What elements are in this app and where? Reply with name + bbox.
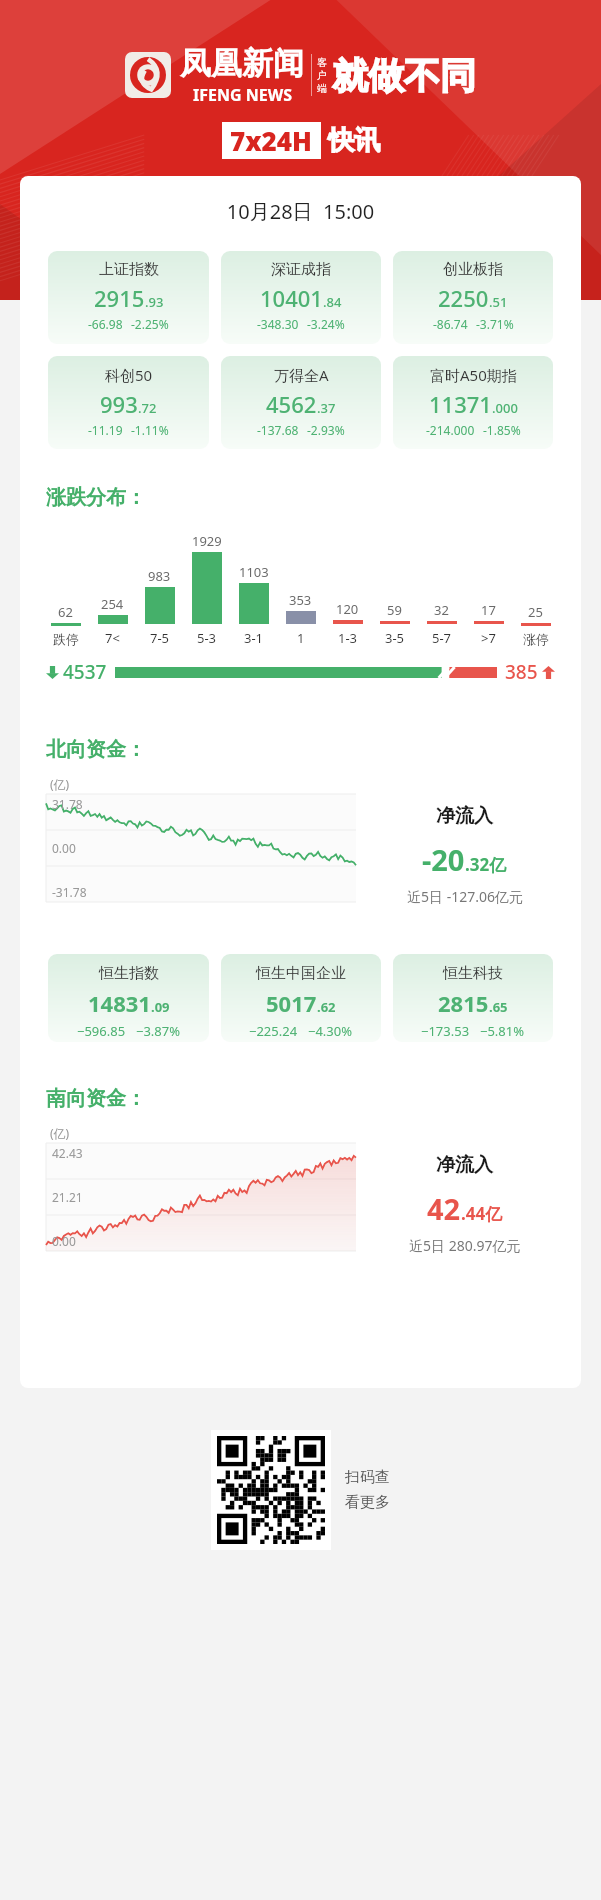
staticText: -3.24% bbox=[307, 316, 345, 332]
staticText: 科创50 bbox=[105, 365, 153, 385]
staticText: 跌停 bbox=[53, 631, 79, 647]
staticText: -348.30 bbox=[257, 316, 299, 332]
staticText: -214.000 bbox=[426, 422, 475, 438]
staticText: -2.93% bbox=[307, 422, 345, 438]
staticText: -137.68 bbox=[257, 422, 299, 438]
staticText: 4537 bbox=[63, 659, 107, 685]
staticText: 2815 bbox=[438, 988, 489, 1018]
staticText: 62 bbox=[58, 603, 73, 621]
staticText: 北向资金： bbox=[46, 737, 146, 762]
staticText: -1.85% bbox=[483, 422, 521, 438]
staticText: 25 bbox=[528, 603, 543, 621]
button[interactable]: 扫码查看更多二维码 bbox=[211, 1430, 331, 1550]
button[interactable]: 上证指数 bbox=[48, 251, 209, 344]
staticText: 3-1 bbox=[244, 629, 264, 647]
staticText: 353 bbox=[289, 591, 312, 609]
staticText: 近5日 280.97亿元 bbox=[409, 1236, 521, 1255]
staticText: 17 bbox=[481, 601, 496, 619]
staticText: 7x24H bbox=[230, 123, 313, 158]
staticText: 1-3 bbox=[338, 629, 358, 647]
staticText: -11.19 bbox=[88, 422, 123, 438]
staticText: −5.81% bbox=[480, 1022, 525, 1040]
staticText: -31.78 bbox=[52, 884, 87, 900]
staticText: 21.21 bbox=[52, 1189, 83, 1205]
staticText: 42 bbox=[427, 1189, 461, 1228]
button[interactable]: 科创50 bbox=[48, 356, 209, 449]
staticText: 净流入 bbox=[436, 804, 493, 828]
staticText: .93 bbox=[145, 293, 164, 311]
staticText: -66.98 bbox=[88, 316, 123, 332]
staticText: 快讯 bbox=[328, 124, 380, 157]
staticText: 4562 bbox=[266, 389, 317, 419]
staticText: .000 bbox=[492, 399, 518, 417]
staticText: 扫码查 bbox=[345, 1468, 390, 1487]
staticText: 南向资金： bbox=[46, 1086, 146, 1111]
staticText: .37 bbox=[317, 399, 336, 417]
staticText: 5017 bbox=[266, 988, 317, 1018]
button[interactable]: 恒生科技 bbox=[393, 954, 553, 1042]
staticText: 凤凰新闻 bbox=[180, 44, 304, 83]
staticText: 983 bbox=[148, 567, 171, 585]
staticText: 5-3 bbox=[197, 629, 217, 647]
staticText: (亿) bbox=[50, 1125, 70, 1141]
staticText: -3.71% bbox=[476, 316, 514, 332]
staticText: 10月28日 15:00 bbox=[20, 198, 581, 225]
staticText: 就做不同 bbox=[332, 53, 476, 98]
staticText: 上证指数 bbox=[99, 260, 159, 279]
staticText: 59 bbox=[387, 601, 402, 619]
staticText: −173.53 bbox=[421, 1022, 470, 1040]
staticText: 0.00 bbox=[52, 1233, 76, 1249]
staticText: 户 bbox=[317, 69, 327, 82]
staticText: 1103 bbox=[239, 563, 269, 581]
staticText: 2250 bbox=[438, 283, 489, 313]
staticText: 14831 bbox=[88, 988, 151, 1018]
staticText: -2.25% bbox=[131, 316, 169, 332]
staticText: 恒生科技 bbox=[443, 964, 503, 983]
staticText: 5-7 bbox=[432, 629, 452, 647]
staticText: 涨停 bbox=[523, 631, 549, 647]
button[interactable]: 万得全A bbox=[221, 356, 381, 449]
staticText: 385 bbox=[505, 659, 538, 685]
staticText: 7-5 bbox=[150, 629, 170, 647]
staticText: .84 bbox=[323, 293, 342, 311]
staticText: 客 bbox=[317, 56, 327, 69]
staticText: >7 bbox=[481, 629, 496, 647]
staticText: 恒生中国企业 bbox=[256, 964, 346, 983]
staticText: −596.85 bbox=[77, 1022, 126, 1040]
staticText: .51 bbox=[489, 293, 508, 311]
staticText: 3-5 bbox=[385, 629, 405, 647]
staticText: 31.78 bbox=[52, 796, 83, 812]
staticText: -86.74 bbox=[433, 316, 468, 332]
staticText: 端 bbox=[317, 82, 327, 95]
staticText: .44亿 bbox=[461, 1202, 503, 1225]
staticText: 2915 bbox=[94, 283, 145, 313]
button[interactable]: 恒生中国企业 bbox=[221, 954, 381, 1042]
staticText: 254 bbox=[101, 595, 124, 613]
button[interactable]: 深证成指 bbox=[221, 251, 381, 344]
staticText: .62 bbox=[317, 998, 336, 1016]
staticText: 10401 bbox=[260, 283, 323, 313]
button[interactable]: 恒生指数 bbox=[48, 954, 209, 1042]
button[interactable]: 创业板指 bbox=[393, 251, 553, 344]
staticText: 近5日 -127.06亿元 bbox=[407, 887, 523, 906]
staticText: 120 bbox=[336, 600, 359, 618]
staticText: .65 bbox=[489, 998, 508, 1016]
button[interactable]: 富时A50期指 bbox=[393, 356, 553, 449]
staticText: 创业板指 bbox=[443, 260, 503, 279]
staticText: .72 bbox=[138, 399, 157, 417]
staticText: 恒生指数 bbox=[99, 964, 159, 983]
staticText: −225.24 bbox=[249, 1022, 298, 1040]
staticText: 1 bbox=[297, 629, 305, 647]
staticText: 净流入 bbox=[436, 1153, 493, 1177]
